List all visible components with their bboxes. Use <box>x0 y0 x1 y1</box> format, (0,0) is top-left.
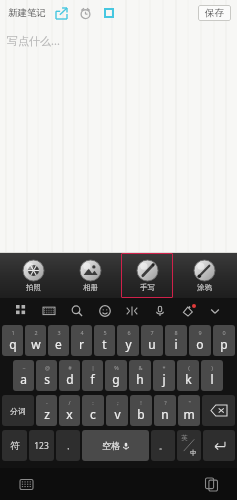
button[interactable]: Enter <box>203 430 235 461</box>
button[interactable]: Emoji <box>95 301 115 321</box>
button[interactable]: & <box>129 360 151 391</box>
staticText: ， <box>64 441 72 451</box>
staticText: s <box>44 371 50 387</box>
button[interactable]: 6 <box>117 325 139 356</box>
staticText: ! <box>140 399 142 406</box>
staticText: 123 <box>34 440 49 452</box>
staticText: g <box>112 371 120 387</box>
staticText: x <box>66 406 73 422</box>
button[interactable]: 保存 <box>198 5 231 21</box>
button[interactable]: Reminder <box>77 5 93 21</box>
button[interactable]: ) <box>201 360 223 391</box>
button[interactable]: Switch language <box>177 430 201 461</box>
staticText: y <box>125 336 132 352</box>
button[interactable]: 3 <box>48 325 69 356</box>
button[interactable]: 相册 <box>64 253 116 298</box>
staticText: 新建笔记 <box>8 7 46 19</box>
staticText: 符 <box>10 440 20 452</box>
button[interactable]: Recents <box>201 474 221 494</box>
button[interactable]: Keyboard <box>16 474 36 494</box>
button[interactable]: Checklist <box>101 5 117 21</box>
button[interactable]: @ <box>36 360 57 391</box>
staticText: l <box>210 371 214 387</box>
button[interactable]: 7 <box>141 325 163 356</box>
staticText: f <box>90 371 95 387</box>
staticText: n <box>161 406 169 422</box>
button[interactable]: 拍照 <box>7 253 59 298</box>
button[interactable]: 分词 <box>2 395 34 426</box>
staticText: a <box>20 371 27 387</box>
staticText: 英 <box>181 434 188 442</box>
button[interactable]: 0 <box>213 325 235 356</box>
staticText: 手写 <box>140 283 155 292</box>
button[interactable]: ; <box>106 395 128 426</box>
staticText: b <box>137 406 145 422</box>
button[interactable]: 2 <box>25 325 46 356</box>
staticText: 3 <box>57 329 61 336</box>
staticText: 7 <box>150 329 154 336</box>
button[interactable]: | <box>82 360 103 391</box>
button[interactable]: : <box>82 395 104 426</box>
button[interactable]: / <box>59 395 80 426</box>
button[interactable]: 手写 <box>121 253 173 298</box>
button[interactable]: 9 <box>189 325 211 356</box>
button[interactable]: ~ <box>13 360 34 391</box>
staticText: 写点什么... <box>7 33 60 48</box>
button[interactable]: 符 <box>2 430 27 461</box>
button[interactable]: ? <box>154 395 176 426</box>
button[interactable]: Apps <box>12 301 32 321</box>
staticText: c <box>90 406 96 422</box>
staticText: t <box>102 336 107 352</box>
staticText: h <box>136 371 144 387</box>
button[interactable]: Voice change <box>122 301 142 321</box>
staticText: o <box>196 336 204 352</box>
staticText: j <box>162 371 166 387</box>
staticText: 保存 <box>205 7 224 19</box>
staticText: k <box>185 371 192 387</box>
button[interactable]: # <box>59 360 80 391</box>
staticText: % <box>114 364 119 371</box>
staticText: 中 <box>190 449 197 457</box>
button[interactable]: 空格 <box>82 430 149 461</box>
button[interactable]: ， <box>56 430 80 461</box>
button[interactable]: " <box>178 395 200 426</box>
staticText: 1 <box>11 329 15 336</box>
button[interactable]: 。 <box>151 430 175 461</box>
button[interactable]: 5 <box>94 325 115 356</box>
button[interactable]: Stickers <box>178 301 198 321</box>
staticText: 相册 <box>83 283 98 292</box>
staticText: & <box>138 364 143 371</box>
staticText: 。 <box>159 441 167 451</box>
staticText: m <box>183 406 195 422</box>
button[interactable]: Backspace <box>202 395 235 426</box>
button[interactable]: * <box>153 360 175 391</box>
staticText: # <box>68 364 72 371</box>
button[interactable]: Keyboard <box>39 301 59 321</box>
staticText: r <box>79 336 84 352</box>
button[interactable]: 123 <box>29 430 54 461</box>
button[interactable]: 涂鸦 <box>178 253 230 298</box>
button[interactable]: - <box>36 395 57 426</box>
staticText: 5 <box>103 329 107 336</box>
staticText: 9 <box>198 329 202 336</box>
staticText: 2 <box>34 329 38 336</box>
button[interactable]: 1 <box>2 325 23 356</box>
staticText: ? <box>164 399 167 406</box>
staticText: 0 <box>222 329 226 336</box>
button[interactable]: Microphone <box>150 301 170 321</box>
staticText: - <box>46 399 48 406</box>
button[interactable]: ( <box>177 360 199 391</box>
button[interactable]: 8 <box>165 325 187 356</box>
button[interactable]: ! <box>130 395 152 426</box>
button[interactable]: 4 <box>71 325 92 356</box>
staticText: 拍照 <box>26 283 41 292</box>
staticText: u <box>148 336 156 352</box>
staticText: * <box>162 364 166 371</box>
button[interactable]: Search <box>67 301 87 321</box>
staticText: 8 <box>174 329 178 336</box>
button[interactable]: % <box>105 360 127 391</box>
button[interactable]: Share <box>53 5 69 21</box>
staticText: e <box>55 336 62 352</box>
staticText: 分词 <box>10 406 26 416</box>
button[interactable]: Collapse keyboard <box>205 301 225 321</box>
